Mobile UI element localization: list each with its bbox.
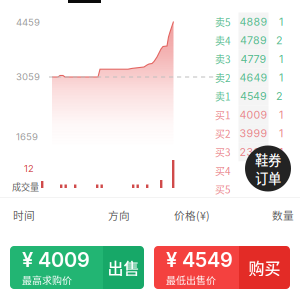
staticText: 1	[279, 71, 283, 84]
staticText: 4009	[239, 108, 267, 121]
staticText: 4789	[240, 34, 267, 47]
staticText: 最低出售价	[166, 273, 216, 287]
staticText: ¥ 4549	[166, 248, 233, 272]
staticText: 4779	[240, 52, 266, 65]
staticText: 4549	[240, 90, 267, 103]
staticText: 3999	[239, 127, 267, 140]
staticText: 4649	[239, 71, 267, 84]
button[interactable]: 卖3	[215, 50, 283, 68]
staticText: 2	[276, 34, 283, 47]
staticText: 买1	[215, 108, 231, 122]
staticText: 出售	[107, 256, 139, 279]
staticText: 价格(¥)	[174, 207, 210, 223]
staticText: 数量	[272, 207, 294, 223]
staticText: 最高求购价	[22, 273, 72, 287]
button[interactable]: 卖1	[215, 87, 283, 105]
button[interactable]: ¥ 4549	[154, 246, 290, 289]
staticText: 12	[24, 163, 34, 174]
staticText: 2399	[239, 145, 267, 158]
staticText: 买4	[215, 163, 231, 178]
button[interactable]: ¥ 4009	[10, 246, 144, 289]
staticText: 卖2	[215, 70, 231, 85]
staticText: 卖1	[215, 89, 231, 103]
staticText: 鞋券	[255, 150, 281, 169]
staticText: 3059	[16, 71, 40, 83]
staticText: 1659	[16, 131, 38, 143]
button[interactable]: 卖5	[215, 12, 283, 31]
staticText: 卖4	[215, 33, 231, 48]
button[interactable]: 卖2	[215, 68, 283, 87]
staticText: 2	[276, 90, 283, 103]
button[interactable]: 买2	[215, 124, 283, 143]
staticText: 4459	[16, 16, 40, 28]
staticText: 1	[279, 145, 283, 158]
staticText: 1	[279, 15, 283, 28]
staticText: 4889	[239, 15, 267, 28]
staticText: 1	[279, 127, 283, 140]
button[interactable]: 买5	[215, 180, 283, 198]
staticText: 卖3	[215, 52, 231, 66]
staticText: 购买	[248, 256, 280, 279]
staticText: 卖5	[215, 15, 231, 29]
staticText: 时间	[13, 207, 35, 223]
button[interactable]: 买4	[215, 161, 283, 180]
button[interactable]: 买3	[215, 143, 283, 161]
staticText: 方向	[108, 207, 130, 223]
staticText: 买5	[215, 182, 231, 196]
staticText: 1	[279, 52, 283, 65]
staticText: 1	[279, 108, 283, 121]
staticText: 成交量	[12, 180, 39, 193]
button[interactable]: 卖4	[215, 31, 283, 50]
staticText: 买3	[215, 145, 231, 159]
staticText: 买2	[215, 126, 231, 141]
button[interactable]: 买1	[215, 105, 283, 124]
staticText: ¥ 4009	[22, 248, 90, 272]
button[interactable]: 鞋券	[245, 145, 291, 191]
staticText: 订单	[255, 168, 281, 187]
